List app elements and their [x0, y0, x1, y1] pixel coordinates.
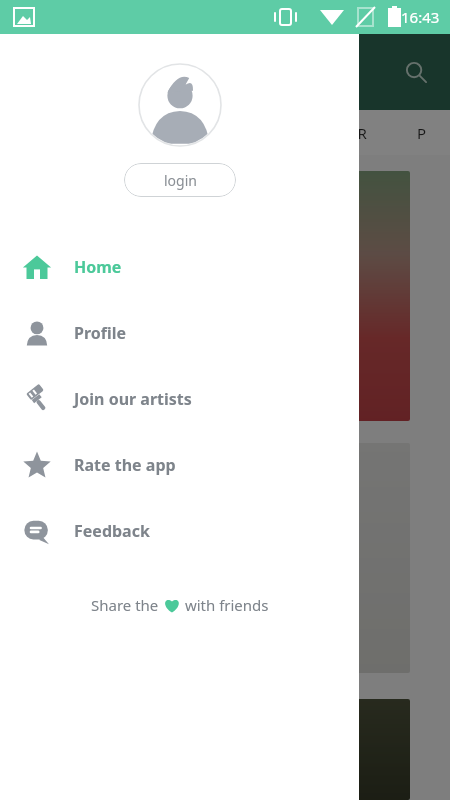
- button[interactable]: Search: [394, 50, 438, 94]
- button[interactable]: [20, 699, 410, 800]
- staticText: Rate the app: [74, 454, 176, 476]
- button[interactable]: Home: [0, 234, 359, 300]
- staticText: Join our artists: [74, 388, 192, 410]
- staticText: Feedback: [74, 520, 150, 542]
- staticText: LAR: [340, 123, 367, 143]
- staticText: login: [164, 171, 197, 190]
- staticText: Home: [74, 256, 122, 278]
- staticText: P: [417, 123, 427, 143]
- button[interactable]: Join our artists: [0, 366, 359, 432]
- staticText: Share the: [91, 595, 163, 615]
- staticText: with friends: [181, 595, 269, 615]
- staticText: 16:43: [401, 7, 440, 27]
- button[interactable]: login: [124, 163, 236, 197]
- button[interactable]: Share the: [0, 595, 359, 615]
- button[interactable]: Feedback: [0, 498, 359, 564]
- staticText: Profile: [74, 322, 127, 344]
- button[interactable]: Rate the app: [0, 432, 359, 498]
- button[interactable]: [20, 171, 410, 421]
- button[interactable]: [20, 443, 410, 673]
- button[interactable]: Profile: [0, 300, 359, 366]
